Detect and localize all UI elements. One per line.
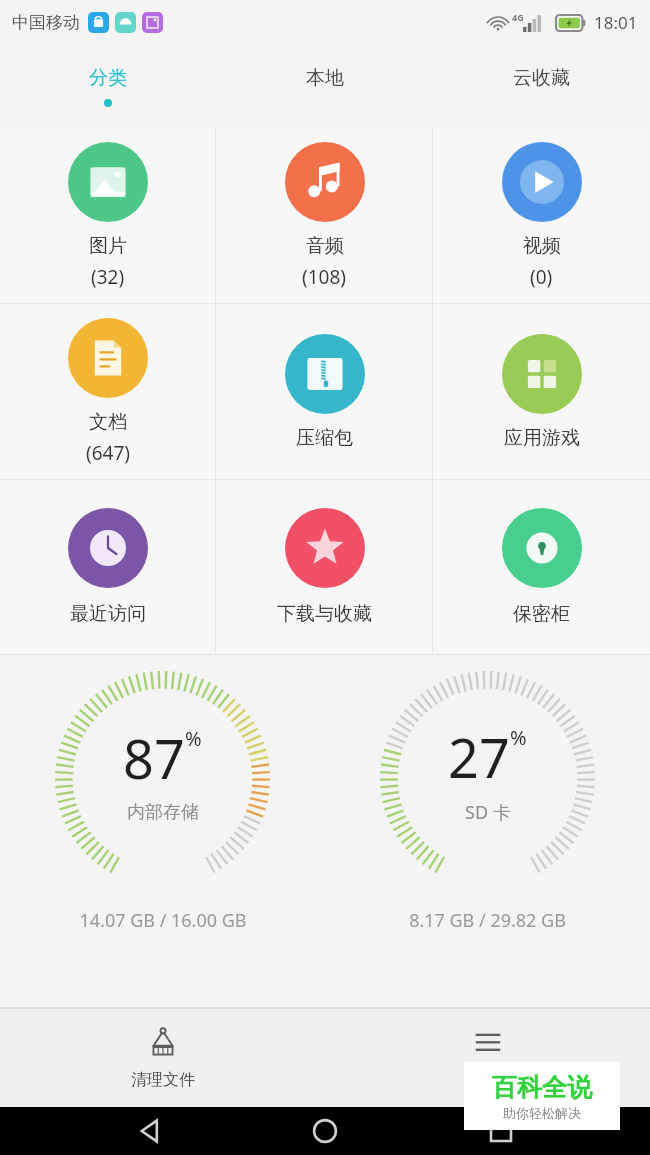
staticText: 下载与收藏 [277, 602, 372, 626]
staticText: 内部存储 [127, 801, 199, 824]
staticText: 18:01 [594, 11, 638, 34]
staticText: 4G [512, 11, 524, 23]
staticText: 压缩包 [296, 426, 353, 450]
staticText: 菜单 [472, 1070, 504, 1090]
button[interactable]: 文档 [0, 304, 216, 479]
staticText: 分类 [89, 66, 127, 90]
staticText: 音频 [306, 234, 344, 258]
staticText: 百科全说 [492, 1072, 592, 1103]
staticText: 应用游戏 [504, 426, 580, 450]
staticText: (32) [91, 264, 125, 290]
staticText: (647) [86, 440, 131, 466]
staticText: 本地 [306, 66, 344, 90]
staticText: 视频 [523, 234, 561, 258]
staticText: 清理文件 [131, 1070, 195, 1090]
button[interactable]: 分类 [0, 44, 216, 128]
staticText: 图片 [89, 234, 127, 258]
button[interactable]: 本地 [216, 44, 433, 128]
button[interactable]: 应用游戏 [433, 304, 650, 479]
staticText: (108) [302, 264, 347, 290]
staticText: 助你轻松解决 [503, 1105, 581, 1121]
staticText: 文档 [89, 410, 127, 434]
button[interactable]: 压缩包 [216, 304, 433, 479]
staticText: 最近访问 [70, 602, 146, 626]
staticText: 云收藏 [513, 66, 570, 90]
staticText: (0) [530, 264, 553, 290]
staticText: % [185, 725, 202, 752]
button[interactable]: Home [298, 1107, 352, 1155]
button[interactable]: 云收藏 [433, 44, 650, 128]
button[interactable]: 保密柜 [433, 480, 650, 654]
button[interactable]: 菜单 [325, 1009, 650, 1107]
staticText: 27 [448, 720, 510, 794]
staticText: 14.07 GB / 16.00 GB [79, 908, 247, 933]
button[interactable]: 最近访问 [0, 480, 216, 654]
button[interactable]: 图片 [0, 128, 216, 303]
staticText: 保密柜 [513, 602, 570, 626]
button[interactable]: 音频 [216, 128, 433, 303]
button[interactable]: Recents [474, 1107, 528, 1155]
button[interactable]: 视频 [433, 128, 650, 303]
staticText: SD 卡 [465, 800, 511, 825]
staticText: 中国移动 [12, 12, 80, 33]
button[interactable]: Back [122, 1107, 176, 1155]
staticText: 87 [123, 721, 185, 795]
button[interactable]: 下载与收藏 [216, 480, 433, 654]
staticText: 8.17 GB / 29.82 GB [409, 908, 566, 933]
button[interactable]: 清理文件 [0, 1009, 325, 1107]
staticText: % [510, 724, 527, 751]
